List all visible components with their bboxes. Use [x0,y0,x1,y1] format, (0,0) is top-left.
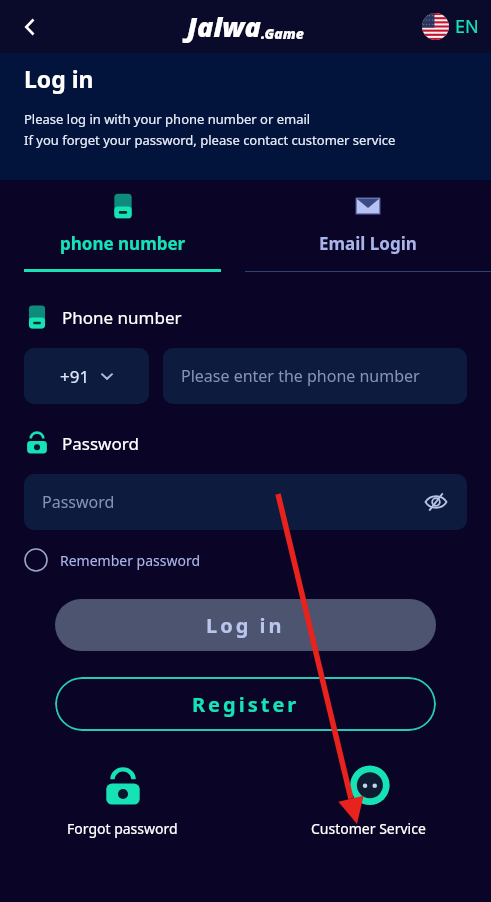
button[interactable]: Please enter the phone number [163,348,467,404]
button[interactable]: phone number [0,184,245,272]
staticText: Phone number [62,306,182,329]
button[interactable]: Register [55,677,436,731]
staticText: Email Login [319,232,417,255]
staticText: Forgot password [67,819,178,838]
staticText: Jalwa [187,8,261,45]
button[interactable]: Password [24,474,467,530]
staticText: Password [62,432,139,455]
staticText: .Game [261,24,304,43]
staticText: phone number [60,232,186,255]
staticText: If you forget your password, please cont… [24,131,396,149]
button[interactable]: Remember password [24,548,201,572]
staticText: Log in [206,612,285,639]
staticText: Customer Service [311,819,426,838]
staticText: Please enter the phone number [181,365,420,387]
button[interactable]: EN [422,13,479,40]
staticText: Remember password [60,551,201,570]
staticText: EN [455,14,479,39]
staticText: Log in [24,63,94,94]
button[interactable]: Back [8,5,52,49]
button[interactable]: Log in [55,599,436,651]
staticText: Password [42,491,115,513]
button[interactable]: Customer Service [245,765,491,838]
staticText: Register [192,691,300,718]
button[interactable]: Show password [421,487,451,517]
button[interactable]: Email Login [245,184,491,272]
staticText: +91 [60,365,90,388]
staticText: Please log in with your phone number or … [24,110,311,128]
button[interactable]: Forgot password [0,765,245,838]
button[interactable]: +91 [24,348,149,404]
